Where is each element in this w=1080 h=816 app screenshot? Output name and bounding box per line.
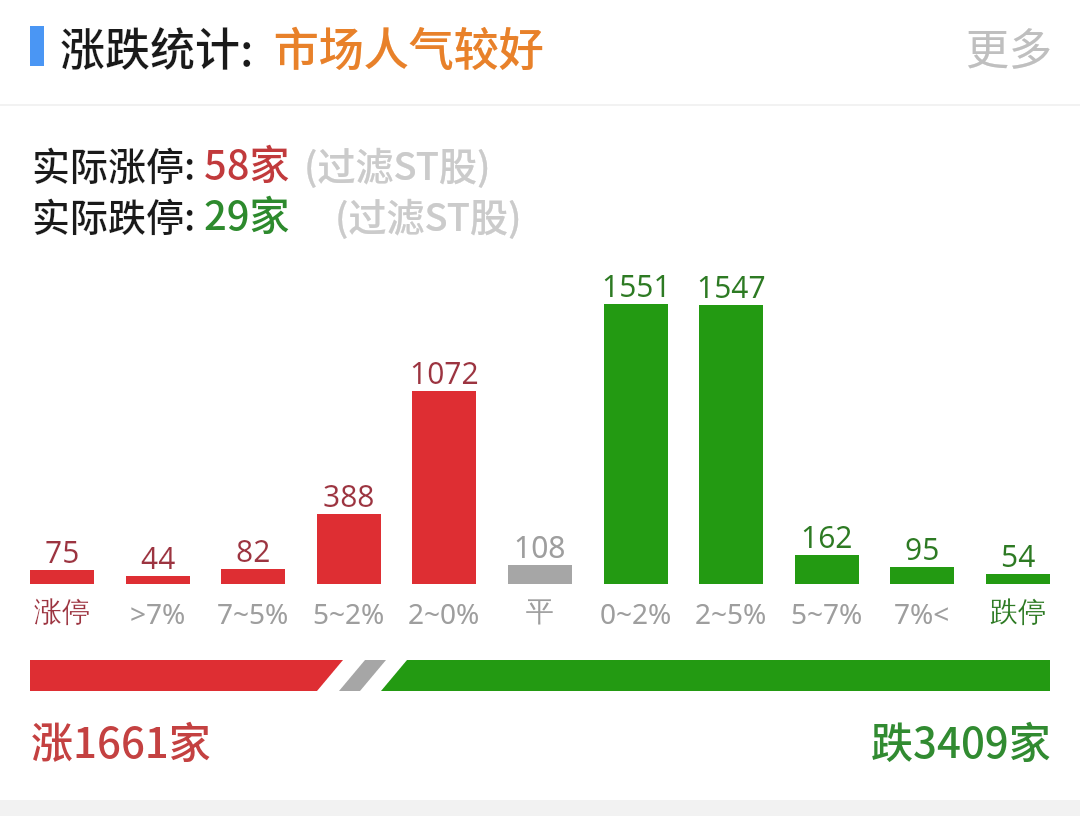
button[interactable]: 实际涨停: (32, 133, 491, 191)
staticText: 更多 (966, 15, 1052, 77)
staticText: 1547 (697, 266, 766, 307)
button[interactable]: 平 108家 (492, 252, 588, 630)
staticText: 涨跌统计: 市场人气较好 (60, 14, 544, 79)
staticText: 实际跌停: (32, 187, 196, 242)
staticText: 涨1661家 (31, 709, 211, 770)
staticText: 2~5% (695, 594, 767, 632)
button[interactable]: 更多 (960, 15, 1058, 77)
button[interactable]: 0~2% 1551家 (588, 252, 684, 630)
staticText: 2~0% (408, 594, 480, 632)
staticText: (过滤ST股) (304, 136, 491, 191)
staticText: 162 (801, 516, 853, 557)
button[interactable]: 涨跌比例条 涨1661家 跌3409家 (30, 660, 1050, 691)
staticText: 涨停 (34, 594, 90, 629)
staticText: 95 (905, 528, 940, 569)
staticText: 82 (236, 530, 271, 571)
staticText: 跌停 (990, 594, 1046, 629)
button[interactable]: 5~2% 388家 (301, 252, 397, 630)
staticText: 实际涨停: (32, 136, 196, 191)
staticText: 75 (45, 531, 80, 572)
staticText: 平 (526, 594, 554, 629)
staticText: 7~5% (217, 594, 289, 632)
staticText: 29家 (204, 184, 290, 242)
staticText: 1551 (602, 265, 671, 306)
staticText: 0~2% (600, 594, 672, 632)
button[interactable]: 5~7% 162家 (779, 252, 875, 630)
button[interactable]: 跌3409家 (871, 709, 1051, 770)
button[interactable]: 7%< 95家 (874, 252, 970, 630)
button[interactable]: 2~5% 1547家 (683, 252, 779, 630)
button[interactable]: 7~5% 82家 (205, 252, 301, 630)
staticText: 108 (514, 526, 566, 567)
staticText: 5~7% (791, 594, 863, 632)
staticText: (过滤ST股) (335, 187, 522, 242)
button[interactable]: 2~0% 1072家 (396, 252, 492, 630)
staticText: 跌3409家 (871, 709, 1051, 770)
button[interactable]: 涨1661家 (31, 709, 211, 770)
button[interactable]: >7% 44家 (110, 252, 206, 630)
button[interactable]: 涨跌统计: 市场人气较好 (0, 0, 1080, 92)
button[interactable]: 实际跌停: (32, 184, 522, 242)
staticText: >7% (130, 594, 186, 632)
staticText: 44 (141, 537, 176, 578)
staticText: 5~2% (313, 594, 385, 632)
staticText: 58家 (204, 133, 290, 191)
staticText: 1072 (410, 352, 479, 393)
button[interactable]: 跌停 54家 (970, 252, 1066, 630)
staticText: 54 (1001, 535, 1036, 576)
staticText: 7%< (894, 594, 950, 632)
staticText: 388 (323, 475, 375, 516)
button[interactable]: 涨停 75家 (14, 252, 110, 630)
